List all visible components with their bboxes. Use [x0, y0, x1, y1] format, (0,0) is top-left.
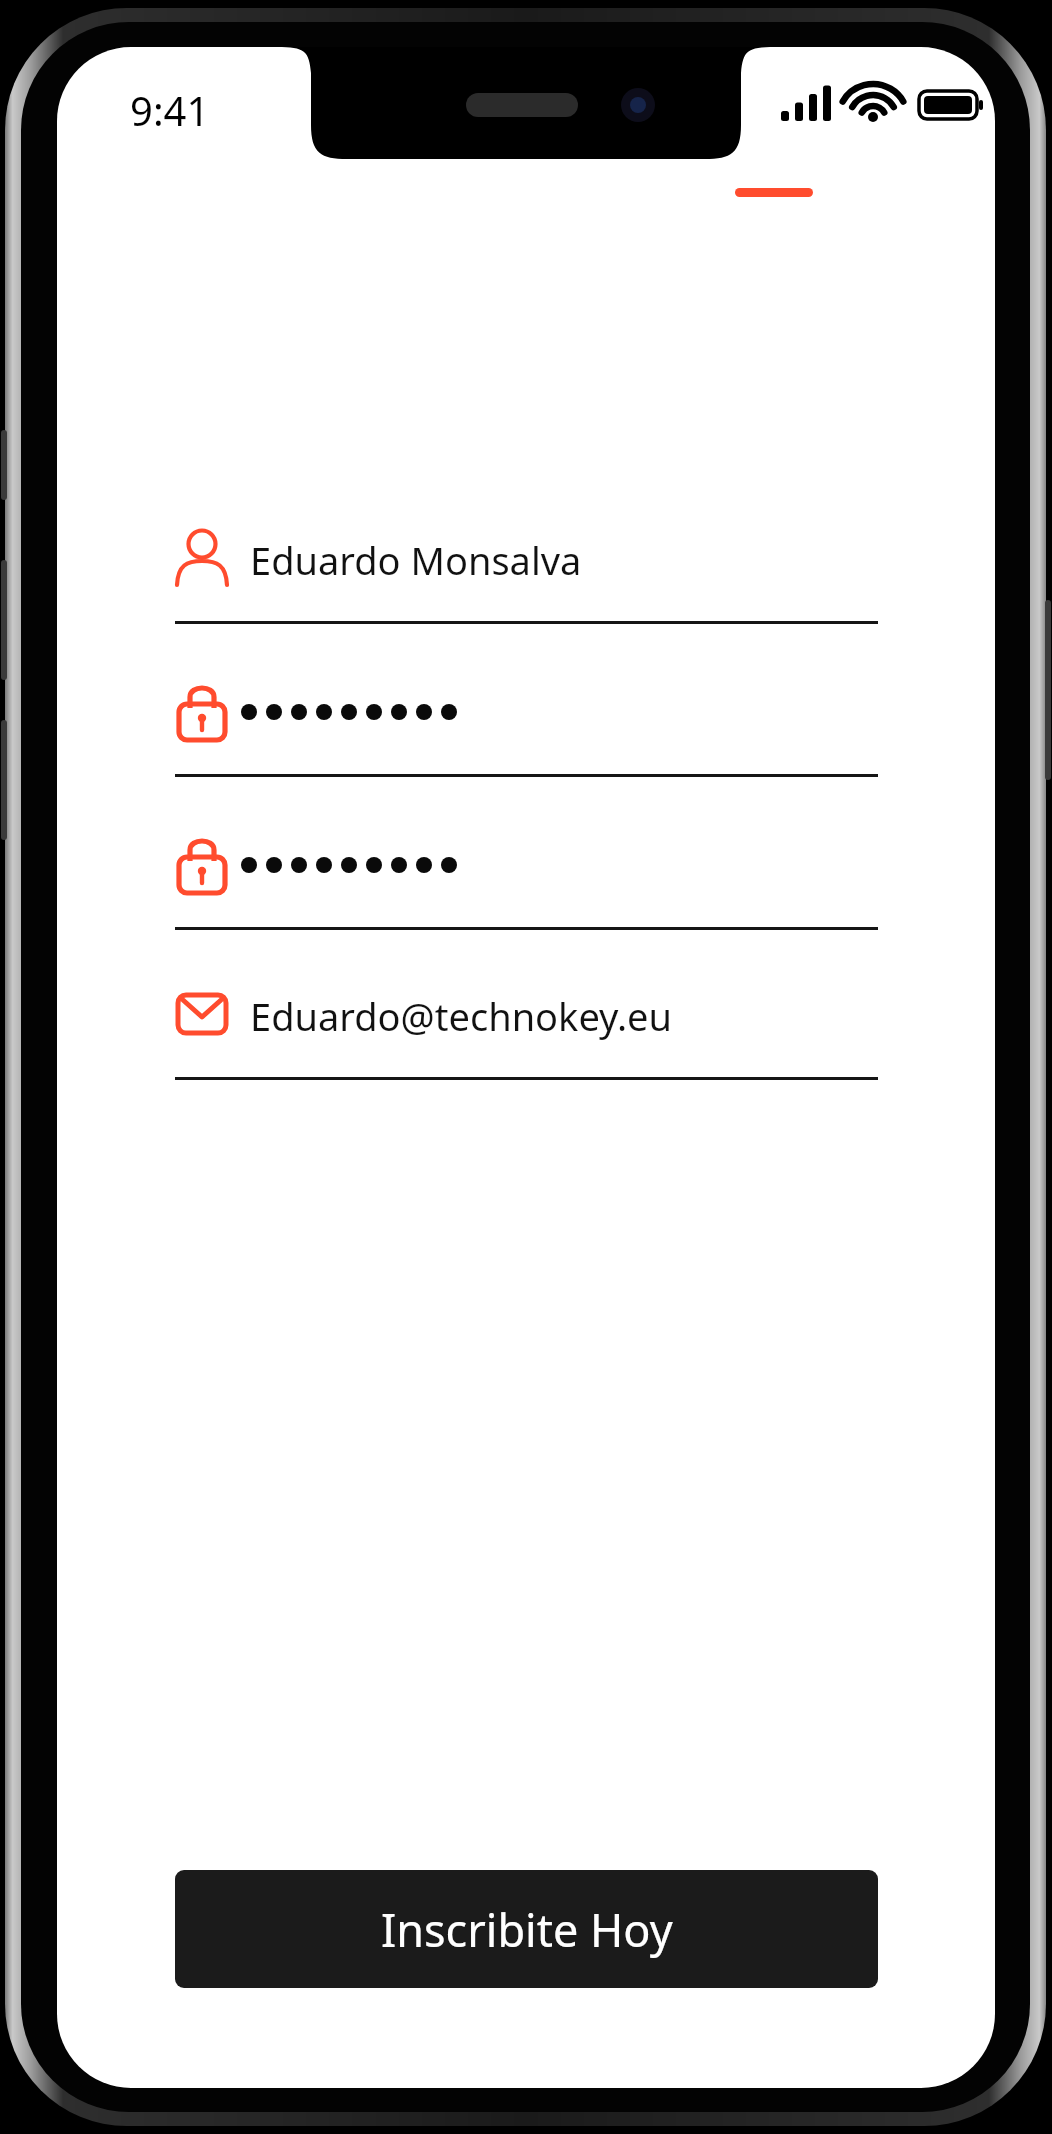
button[interactable]: Name — [175, 527, 878, 623]
button[interactable]: Inscribite Hoy — [175, 1870, 878, 1988]
button[interactable]: Password — [175, 680, 878, 776]
staticText: 9:41 — [130, 83, 210, 137]
staticText: Eduardo Monsalva — [250, 534, 582, 586]
button[interactable]: Confirm password — [175, 833, 878, 929]
button[interactable]: Email — [175, 983, 878, 1079]
staticText: Eduardo@technokey.eu — [250, 990, 673, 1042]
button[interactable] — [735, 188, 813, 197]
staticText: Inscribite Hoy — [381, 1899, 673, 1960]
